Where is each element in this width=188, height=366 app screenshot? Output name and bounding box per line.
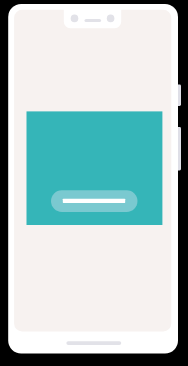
button[interactable]: Get started [51, 190, 138, 212]
button[interactable]: Featured card [27, 111, 163, 225]
